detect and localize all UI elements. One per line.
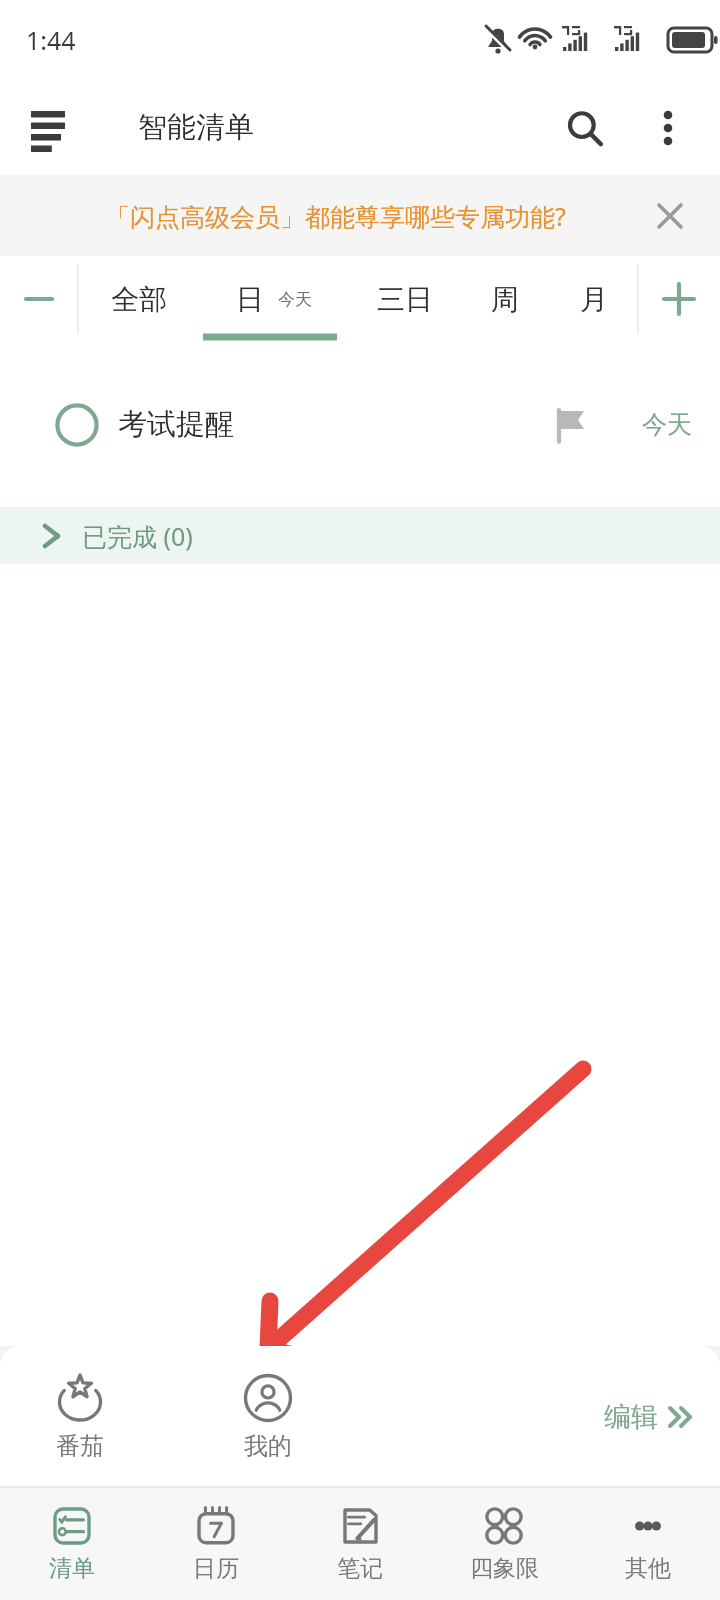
button[interactable]: Menu [14, 93, 84, 163]
button[interactable]: 清单 [0, 1487, 144, 1600]
staticText: 四象限 [470, 1554, 539, 1583]
button[interactable]: 四象限 [432, 1487, 576, 1600]
staticText: 日 [236, 282, 264, 317]
staticText: 其他 [625, 1554, 671, 1583]
button[interactable]: 周 [460, 256, 549, 342]
button[interactable]: 编辑 [604, 1400, 696, 1434]
button[interactable]: 其他 [576, 1487, 720, 1600]
staticText: 三日 [377, 282, 433, 317]
staticText: 已完成 (0) [82, 519, 193, 553]
button[interactable]: 笔记 [288, 1487, 432, 1600]
staticText: 清单 [49, 1554, 95, 1583]
button[interactable]: More options [632, 92, 704, 164]
button[interactable]: 番茄 [22, 1367, 138, 1467]
button[interactable]: 「闪点高级会员」都能尊享哪些专属功能? [0, 175, 720, 256]
button[interactable]: 已完成 (0) [0, 507, 720, 564]
staticText: 番茄 [56, 1431, 104, 1461]
button[interactable]: 我的 [210, 1367, 326, 1467]
staticText: 编辑 [604, 1400, 658, 1434]
button[interactable]: Add list [638, 256, 720, 342]
staticText: 我的 [244, 1431, 292, 1461]
button[interactable]: Close [642, 188, 698, 244]
staticText: 「闪点高级会员」都能尊享哪些专属功能? [105, 199, 566, 233]
button[interactable]: 三日 [349, 256, 460, 342]
staticText: 月 [580, 282, 608, 317]
staticText: 日历 [193, 1554, 239, 1583]
button[interactable]: 考试提醒 [0, 342, 720, 507]
staticText: 今天 [278, 289, 312, 310]
button[interactable]: 日 [199, 256, 349, 342]
button[interactable]: 日历 [144, 1487, 288, 1600]
staticText: 考试提醒 [118, 406, 234, 443]
button[interactable]: 全部 [78, 256, 199, 342]
staticText: 1:44 [26, 23, 76, 57]
button[interactable]: 月 [549, 256, 638, 342]
staticText: 全部 [111, 282, 167, 317]
staticText: 今天 [642, 409, 692, 440]
button[interactable]: Collapse [0, 256, 78, 342]
button[interactable]: Search [548, 92, 620, 164]
staticText: 周 [491, 282, 519, 317]
staticText: 智能清单 [138, 109, 254, 146]
staticText: 笔记 [337, 1554, 383, 1583]
